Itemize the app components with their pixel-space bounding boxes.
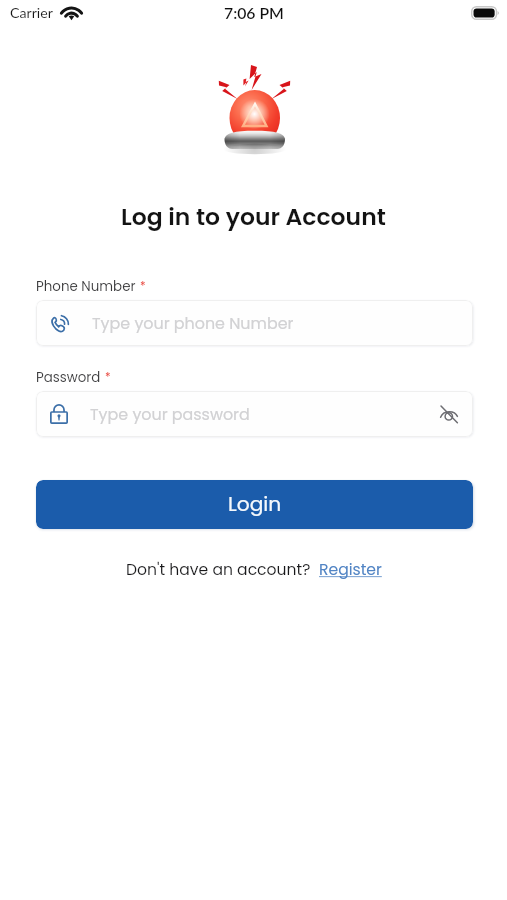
staticText: Don't have an account? [126, 559, 311, 581]
staticText: Type your phone Number [92, 312, 294, 334]
staticText: 7:06 PM [224, 3, 284, 22]
staticText: Password [36, 368, 101, 387]
staticText: Type your password [90, 403, 250, 425]
staticText: Phone Number [36, 277, 136, 296]
button[interactable]: Type your password [36, 391, 473, 437]
staticText: * [140, 278, 146, 294]
button[interactable]: Type your phone Number [36, 300, 473, 346]
button[interactable]: Register [319, 559, 382, 581]
button[interactable]: Login [36, 480, 473, 529]
staticText: * [105, 369, 111, 385]
staticText: Log in to your Account [121, 200, 386, 233]
button[interactable]: Show password [439, 404, 459, 424]
staticText: Login [228, 490, 282, 518]
staticText: Register [319, 559, 382, 581]
staticText: Carrier [10, 4, 53, 21]
